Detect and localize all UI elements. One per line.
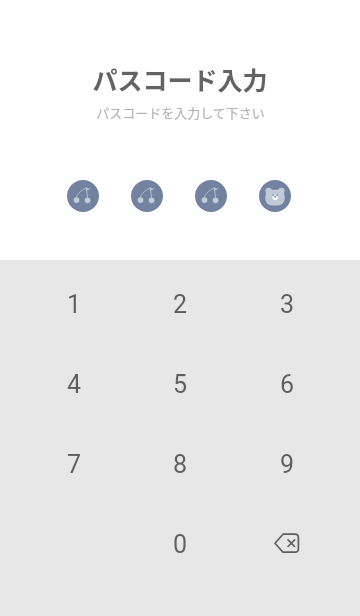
button[interactable]: 4 bbox=[21, 344, 127, 424]
staticText: 4 bbox=[67, 370, 82, 399]
button[interactable]: 2 bbox=[127, 264, 234, 344]
button[interactable]: Delete bbox=[234, 504, 341, 584]
staticText: 8 bbox=[173, 450, 188, 479]
button[interactable]: 8 bbox=[127, 424, 234, 504]
button[interactable]: 7 bbox=[21, 424, 127, 504]
button[interactable]: Passcode character 4 bbox=[259, 180, 291, 212]
staticText: パスコードを入力して下さい bbox=[96, 103, 265, 122]
button[interactable]: 3 bbox=[234, 264, 341, 344]
staticText: 9 bbox=[280, 450, 295, 479]
button[interactable]: 9 bbox=[234, 424, 341, 504]
staticText: 1 bbox=[67, 290, 82, 319]
button[interactable]: 6 bbox=[234, 344, 341, 424]
button[interactable]: 1 bbox=[21, 264, 127, 344]
button[interactable]: Passcode character 2 bbox=[131, 180, 163, 212]
button[interactable]: Passcode character 1 bbox=[67, 180, 99, 212]
staticText: パスコード入力 bbox=[92, 61, 268, 97]
staticText: 7 bbox=[67, 450, 82, 479]
staticText: 2 bbox=[173, 290, 188, 319]
staticText: 6 bbox=[280, 370, 295, 399]
button[interactable]: 5 bbox=[127, 344, 234, 424]
staticText: 5 bbox=[173, 370, 188, 399]
button[interactable]: Passcode character 3 bbox=[195, 180, 227, 212]
staticText: 3 bbox=[280, 290, 295, 319]
staticText: 0 bbox=[173, 530, 188, 559]
button[interactable]: 0 bbox=[127, 504, 234, 584]
